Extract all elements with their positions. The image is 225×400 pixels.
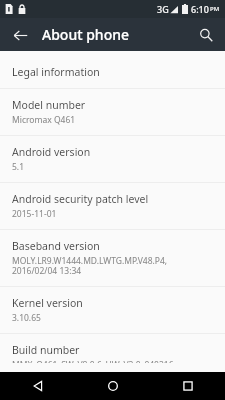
button[interactable]: Back (0, 372, 75, 400)
button[interactable]: Baseband version (0, 230, 225, 286)
staticText: Android security patch level (12, 192, 149, 206)
button[interactable]: Android version (0, 136, 225, 182)
staticText: Legal information (12, 65, 100, 79)
button[interactable]: Back (8, 23, 32, 47)
button[interactable]: Android security patch level (0, 183, 225, 229)
button[interactable]: Legal information (0, 56, 225, 88)
staticText: MMX_Q461_SW_V8.0.6_HW_V2.0_040216 (12, 359, 174, 363)
button[interactable]: Home (75, 372, 150, 400)
staticText: Build number (12, 343, 80, 357)
button[interactable]: Kernel version (0, 287, 225, 333)
staticText: 5.1 (12, 161, 25, 173)
staticText: 3.10.65 (12, 312, 41, 324)
staticText: 2015-11-01 (12, 208, 57, 220)
staticText: About phone (42, 25, 130, 44)
staticText: 3G (157, 3, 169, 15)
staticText: MOLY.LR9.W1444.MD.LWTG.MP.V48.P4, 2016/0… (12, 255, 168, 277)
staticText: Android version (12, 145, 91, 159)
staticText: Model number (12, 98, 86, 112)
staticText: Kernel version (12, 296, 83, 310)
button[interactable]: Build number (0, 334, 225, 372)
button[interactable]: Search (194, 23, 218, 47)
button[interactable]: Recent apps (150, 372, 225, 400)
staticText: PM (210, 5, 220, 13)
staticText: Micromax Q461 (12, 114, 76, 126)
staticText: 6:10 (191, 3, 209, 15)
button[interactable]: Model number (0, 89, 225, 135)
staticText: Baseband version (12, 239, 100, 253)
